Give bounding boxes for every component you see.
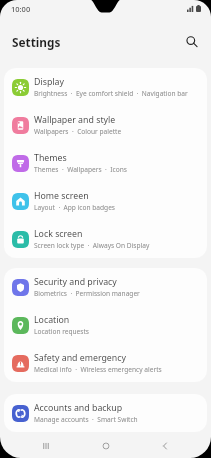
staticText: Biometrics · Permission manager xyxy=(34,289,140,298)
button[interactable]: Recents xyxy=(32,432,60,458)
button[interactable]: Home xyxy=(92,432,120,458)
staticText: Brightness · Eye comfort shield · Naviga… xyxy=(34,89,188,98)
staticText: Safety and emergency xyxy=(34,352,126,364)
staticText: Lock screen xyxy=(34,228,83,240)
button[interactable]: Search xyxy=(181,31,203,53)
staticText: Location xyxy=(34,314,70,326)
staticText: Screen lock type · Always On Display xyxy=(34,241,150,250)
staticText: Themes · Wallpapers · Icons xyxy=(34,165,127,174)
staticText: Layout · App icon badges xyxy=(34,203,116,212)
staticText: Manage accounts · Smart Switch xyxy=(34,415,138,424)
button[interactable]: Location xyxy=(4,306,207,344)
button[interactable]: Safety and emergency xyxy=(4,344,207,382)
button[interactable]: Display xyxy=(4,68,207,106)
button[interactable]: Wallpaper and style xyxy=(4,106,207,144)
staticText: Accounts and backup xyxy=(34,402,123,414)
staticText: Home screen xyxy=(34,190,89,202)
button[interactable]: Lock screen xyxy=(4,220,207,258)
staticText: 10:00 xyxy=(11,4,31,14)
staticText: Location requests xyxy=(34,327,90,336)
staticText: Wallpapers · Colour palette xyxy=(34,127,122,136)
button[interactable]: Security and privacy xyxy=(4,268,207,306)
staticText: Wallpaper and style xyxy=(34,114,116,126)
staticText: Themes xyxy=(34,152,67,164)
button[interactable]: Themes xyxy=(4,144,207,182)
button[interactable]: Accounts and backup xyxy=(4,394,207,432)
button[interactable]: Home screen xyxy=(4,182,207,220)
staticText: Security and privacy xyxy=(34,276,117,288)
staticText: Medical info · Wireless emergency alerts xyxy=(34,365,162,374)
staticText: Display xyxy=(34,76,65,88)
button[interactable]: Back xyxy=(151,432,179,458)
staticText: Settings xyxy=(12,34,61,50)
